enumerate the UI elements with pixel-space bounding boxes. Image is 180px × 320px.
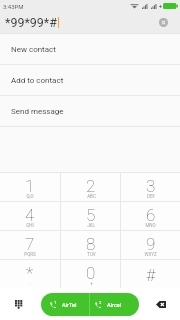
- staticText: 7: [25, 234, 35, 254]
- button[interactable]: 9: [121, 231, 180, 259]
- staticText: AirTel: [62, 302, 77, 308]
- staticText: 1: [25, 176, 35, 196]
- button[interactable]: 6: [121, 202, 180, 230]
- staticText: 2: [99, 300, 102, 305]
- button[interactable]: 2: [61, 173, 120, 201]
- button[interactable]: Backspace: [153, 296, 169, 312]
- button[interactable]: 2: [90, 293, 139, 316]
- staticText: GHI: [26, 223, 34, 228]
- staticText: *99*99*#: [5, 15, 57, 30]
- button[interactable]: New contact: [0, 34, 180, 64]
- staticText: Aircel: [107, 302, 122, 308]
- staticText: #: [146, 265, 156, 285]
- button[interactable]: 1: [0, 173, 60, 201]
- staticText: 4: [25, 205, 35, 225]
- button[interactable]: Clear: [159, 18, 168, 27]
- staticText: 6: [146, 205, 156, 225]
- button[interactable]: 0: [61, 260, 120, 288]
- staticText: 2: [86, 176, 96, 196]
- button[interactable]: 3: [121, 173, 180, 201]
- staticText: +: [90, 281, 93, 286]
- staticText: 3:43PM: [3, 3, 24, 10]
- button[interactable]: 7: [0, 231, 60, 259]
- staticText: .: [29, 281, 31, 286]
- staticText: JKL: [87, 223, 95, 228]
- button[interactable]: 4: [0, 202, 60, 230]
- staticText: 9: [146, 234, 156, 254]
- staticText: 3: [146, 176, 156, 196]
- button[interactable]: Add to contact: [0, 65, 180, 95]
- staticText: Q,O: [26, 194, 34, 199]
- button[interactable]: Send message: [0, 96, 180, 126]
- staticText: 1: [54, 300, 57, 305]
- staticText: Add to contact: [11, 76, 64, 85]
- button[interactable]: 1: [41, 293, 89, 316]
- button[interactable]: *: [0, 260, 60, 288]
- staticText: WXYZ: [144, 252, 157, 257]
- staticText: MNO: [145, 223, 156, 228]
- staticText: TUV: [87, 252, 96, 257]
- staticText: *: [26, 263, 34, 283]
- staticText: DEF: [147, 194, 155, 199]
- staticText: New contact: [11, 45, 56, 54]
- button[interactable]: #: [121, 260, 180, 288]
- staticText: 0: [86, 263, 96, 283]
- staticText: PQRS: [24, 252, 36, 257]
- button[interactable]: 8: [61, 231, 120, 259]
- staticText: ABC: [87, 194, 96, 199]
- staticText: 8: [86, 234, 96, 254]
- button[interactable]: Keypad: [11, 296, 27, 312]
- button[interactable]: 5: [61, 202, 120, 230]
- staticText: 5: [86, 205, 96, 225]
- staticText: Send message: [11, 107, 64, 116]
